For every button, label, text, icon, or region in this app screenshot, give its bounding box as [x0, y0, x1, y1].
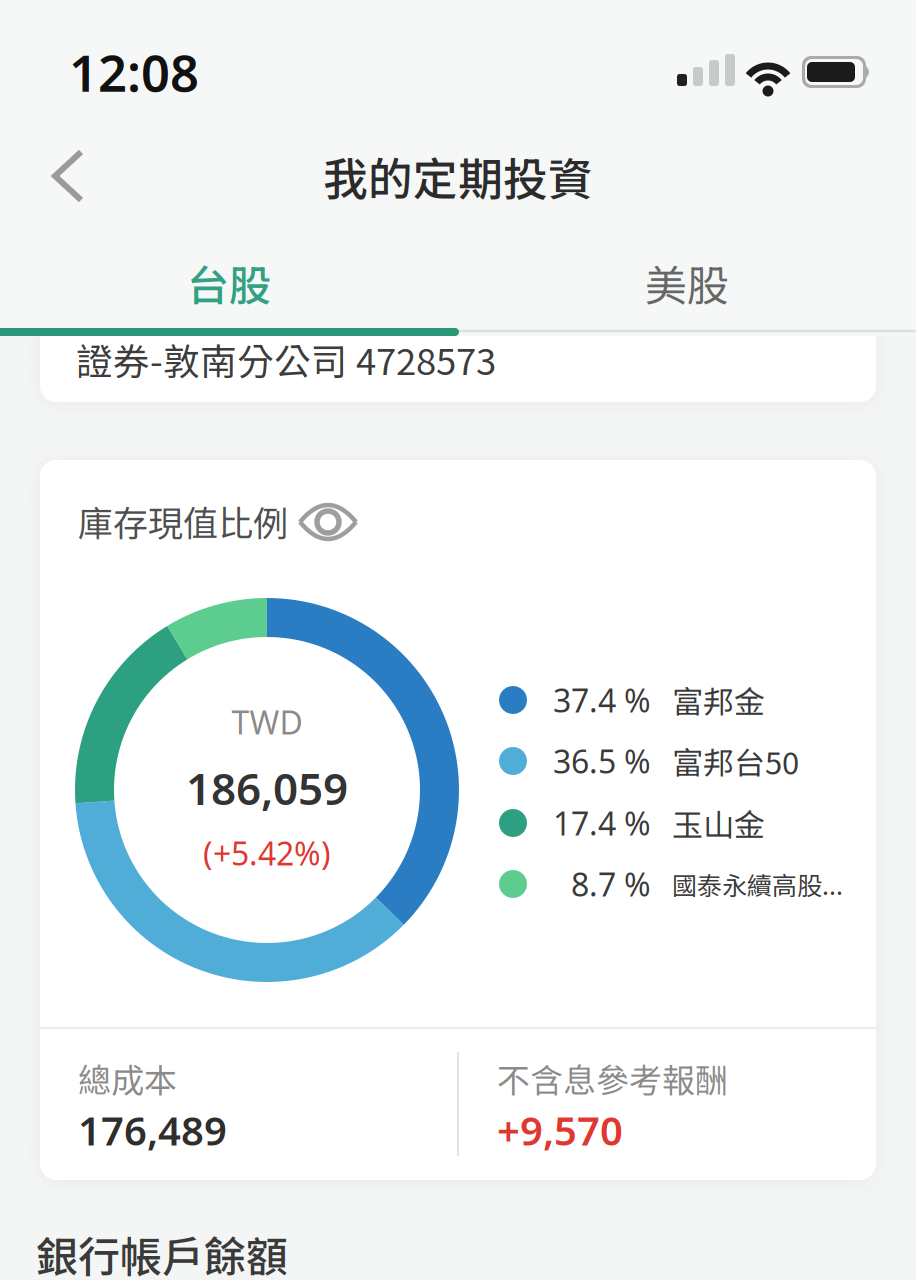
staticText: 庫存現值比例 — [78, 496, 288, 546]
staticText: 總成本 — [78, 1054, 177, 1102]
staticText: 17.4 % — [553, 802, 651, 844]
staticText: 不含息參考報酬 — [497, 1054, 728, 1102]
staticText: 台股 — [187, 253, 271, 313]
staticText: 36.5 % — [553, 740, 651, 782]
button[interactable] — [39, 146, 99, 206]
staticText: 186,059 — [186, 759, 348, 817]
staticText: 12:08 — [69, 38, 199, 106]
button[interactable]: 美股 — [458, 238, 916, 328]
staticText: 37.4 % — [553, 679, 651, 721]
staticText: 176,489 — [78, 1103, 227, 1156]
staticText: 證券-敦南分公司 4728573 — [76, 333, 496, 385]
button[interactable] — [298, 500, 358, 544]
staticText: 富邦台50 — [672, 739, 799, 783]
staticText: (+5.42%) — [203, 832, 331, 874]
staticText: 我的定期投資 — [323, 144, 593, 208]
staticText: 富邦金 — [672, 678, 765, 722]
staticText: 8.7 % — [571, 863, 651, 905]
button[interactable]: 台股 — [0, 238, 458, 328]
staticText: 玉山金 — [672, 801, 765, 845]
staticText: 美股 — [645, 253, 729, 313]
button[interactable]: 證券-敦南分公司 4728573 — [40, 316, 876, 402]
staticText: 國泰永續高股... — [672, 866, 843, 902]
staticText: 銀行帳戶餘額 — [36, 1224, 288, 1280]
staticText: +9,570 — [497, 1103, 623, 1156]
staticText: TWD — [231, 701, 302, 743]
